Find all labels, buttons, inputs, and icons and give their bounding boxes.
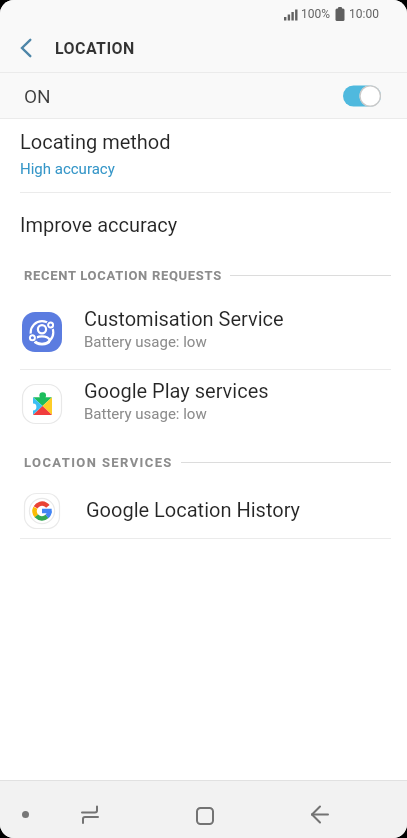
button[interactable] [74, 794, 106, 830]
button[interactable]: Locating method [0, 119, 407, 192]
staticText: Locating method [20, 130, 171, 153]
staticText: Google Location History [86, 498, 301, 521]
staticText: RECENT LOCATION REQUESTS [24, 268, 222, 283]
button[interactable] [189, 796, 221, 832]
button[interactable]: Google Play services [0, 370, 407, 436]
staticText: Battery usage: low [84, 405, 207, 423]
button[interactable]: Google Location History [0, 488, 407, 534]
staticText: LOCATION SERVICES [24, 455, 173, 470]
button[interactable]: ON [0, 73, 407, 118]
staticText: Customisation Service [84, 307, 284, 330]
staticText: High accuracy [20, 160, 115, 178]
staticText: ON [24, 85, 51, 107]
button[interactable] [303, 795, 335, 831]
button[interactable]: Customisation Service [0, 293, 407, 369]
button[interactable]: Improve accuracy [0, 193, 407, 257]
staticText: 100% [301, 7, 331, 21]
staticText: Battery usage: low [84, 333, 207, 351]
button[interactable] [22, 811, 29, 818]
staticText: 10:00 [349, 7, 379, 21]
button[interactable] [0, 26, 48, 70]
staticText: Google Play services [84, 379, 269, 402]
staticText: Improve accuracy [20, 213, 178, 236]
staticText: LOCATION [55, 39, 135, 58]
